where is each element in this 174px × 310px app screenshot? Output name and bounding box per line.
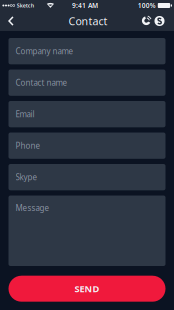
- button[interactable]: Back: [1, 11, 21, 31]
- button[interactable]: Email: [8, 101, 165, 127]
- button[interactable]: Company name: [8, 38, 165, 64]
- staticText: Skype: [15, 172, 37, 182]
- button[interactable]: Phone: [8, 132, 165, 159]
- staticText: 100%: [138, 1, 156, 10]
- staticText: SEND: [74, 282, 99, 295]
- button[interactable]: Skype: [153, 11, 166, 31]
- button[interactable]: Skype: [8, 164, 165, 190]
- staticText: Company name: [15, 46, 73, 56]
- staticText: Sketch: [17, 2, 34, 9]
- staticText: 9:41 AM: [72, 1, 98, 10]
- staticText: Email: [15, 109, 34, 119]
- staticText: Phone: [15, 140, 40, 151]
- staticText: Contact: [68, 14, 107, 28]
- staticText: Contact name: [15, 77, 67, 88]
- button[interactable]: Message: [8, 195, 165, 266]
- button[interactable]: Call: [140, 11, 153, 31]
- button[interactable]: Contact name: [8, 69, 165, 96]
- button[interactable]: SEND: [8, 276, 165, 302]
- staticText: Message: [15, 202, 49, 213]
